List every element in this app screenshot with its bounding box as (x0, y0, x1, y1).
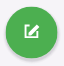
button[interactable]: Compose (5, 6, 57, 58)
